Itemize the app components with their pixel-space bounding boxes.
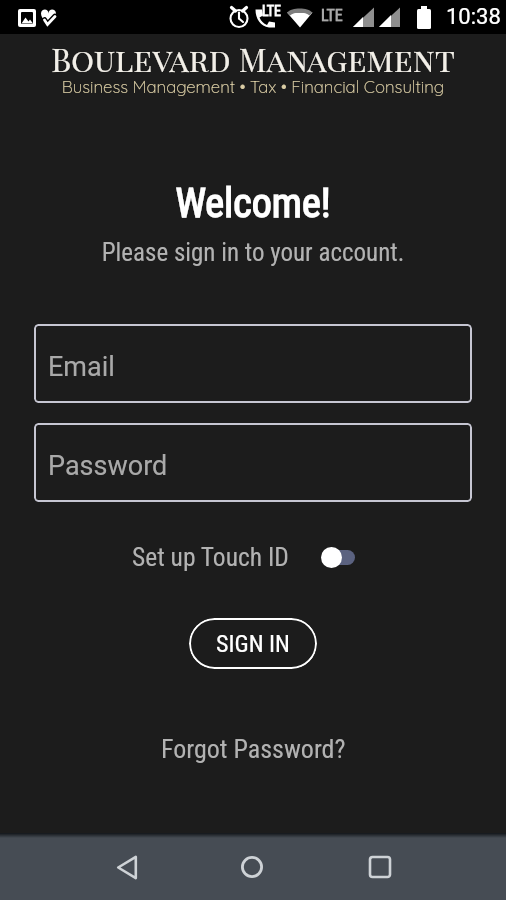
- button[interactable]: Home: [216, 833, 288, 900]
- staticText: Boulevard Management: [0, 37, 506, 80]
- staticText: LTE: [321, 6, 343, 25]
- button[interactable]: Recent apps: [344, 833, 416, 900]
- staticText: Set up Touch ID: [132, 542, 289, 572]
- staticText: Business Management • Tax • Financial Co…: [0, 76, 506, 97]
- staticText: SIGN IN: [216, 630, 290, 658]
- staticText: Password: [48, 450, 168, 482]
- staticText: Email: [48, 351, 115, 383]
- button[interactable]: Password: [34, 423, 472, 502]
- button[interactable]: Set up Touch ID toggle: [321, 537, 355, 577]
- staticText: Forgot Password?: [161, 734, 346, 764]
- button[interactable]: Back: [91, 834, 163, 900]
- staticText: Please sign in to your account.: [0, 238, 506, 267]
- staticText: Welcome!: [0, 180, 506, 227]
- staticText: LTE: [262, 3, 282, 19]
- staticText: 10:38: [446, 4, 501, 30]
- button[interactable]: Email: [34, 324, 472, 403]
- button[interactable]: Forgot Password?: [151, 730, 356, 768]
- button[interactable]: SIGN IN: [189, 618, 317, 669]
